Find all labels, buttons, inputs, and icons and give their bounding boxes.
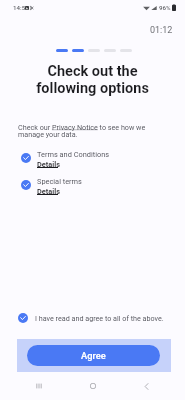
button[interactable]: Agree xyxy=(27,345,160,366)
button[interactable]: Home xyxy=(79,372,107,400)
button[interactable]: Special terms xyxy=(0,177,185,197)
staticText: 96% xyxy=(159,4,171,11)
staticText: Details xyxy=(37,160,60,169)
staticText: Details xyxy=(37,187,60,196)
button[interactable]: Recent apps xyxy=(25,372,53,400)
staticText: I have read and agree to all of the abov… xyxy=(35,314,164,322)
staticText: Check our Privacy Notice to see how we m… xyxy=(18,123,148,139)
staticText: Check out the following options xyxy=(0,63,185,97)
staticText: 01:12 xyxy=(150,25,173,36)
staticText: Special terms xyxy=(37,177,82,186)
button[interactable]: Terms and Conditions xyxy=(0,150,185,170)
button[interactable]: Back xyxy=(132,372,160,400)
staticText: 14:58 xyxy=(13,4,29,11)
staticText: Terms and Conditions xyxy=(37,150,110,159)
button[interactable]: I have read and agree to all of the abov… xyxy=(0,311,185,325)
staticText: Agree xyxy=(81,350,106,361)
